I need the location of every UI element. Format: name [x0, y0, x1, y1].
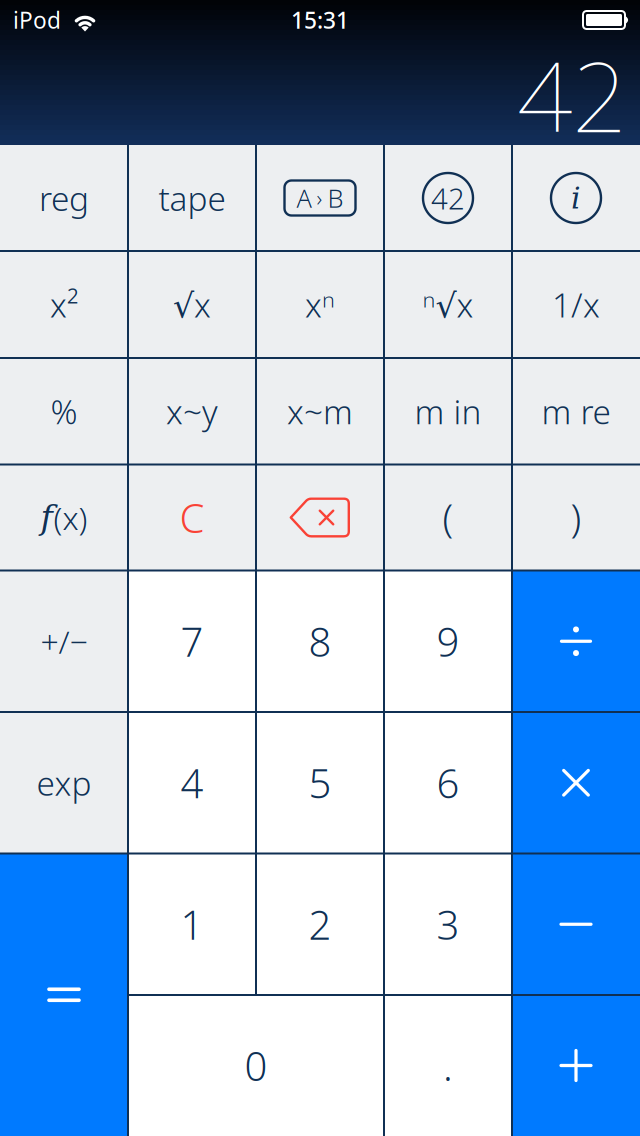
staticText: 7: [180, 615, 203, 668]
button[interactable]: Info: [512, 145, 640, 251]
button[interactable]: Add: [512, 995, 640, 1136]
staticText: 42: [431, 178, 465, 217]
staticText: f: [40, 498, 52, 537]
staticText: B: [327, 181, 343, 215]
button[interactable]: exp: [0, 712, 128, 853]
staticText: C: [179, 491, 204, 544]
staticText: i: [571, 180, 581, 215]
staticText: exp: [36, 761, 91, 805]
staticText: 3: [436, 898, 459, 951]
staticText: m re: [541, 389, 610, 433]
button[interactable]: tape: [128, 145, 256, 251]
button[interactable]: C: [128, 464, 256, 570]
button[interactable]: 1: [128, 853, 256, 995]
staticText: ›: [316, 184, 322, 212]
button[interactable]: 7: [128, 570, 256, 712]
button[interactable]: ⁿ√x: [384, 251, 512, 358]
button[interactable]: +/−: [0, 570, 128, 712]
staticText: x~m: [287, 389, 353, 433]
staticText: (x): [53, 496, 87, 539]
staticText: iPod: [13, 5, 61, 35]
staticText: 1/x: [552, 282, 600, 327]
button[interactable]: 6: [384, 712, 512, 853]
button[interactable]: 5: [256, 712, 384, 853]
button[interactable]: x²: [0, 251, 128, 358]
button[interactable]: (: [384, 464, 512, 570]
button[interactable]: Equals: [0, 853, 128, 1136]
button[interactable]: Multiply: [512, 712, 640, 853]
staticText: .: [443, 1039, 453, 1092]
staticText: 8: [308, 615, 331, 668]
button[interactable]: Function: [0, 464, 128, 570]
staticText: xⁿ: [305, 282, 335, 327]
button[interactable]: Divide: [512, 570, 640, 712]
staticText: 5: [308, 756, 331, 809]
staticText: 42: [517, 30, 627, 159]
button[interactable]: x~y: [128, 358, 256, 464]
staticText: %: [50, 389, 77, 433]
staticText: 2: [308, 898, 331, 951]
staticText: 4: [180, 756, 203, 809]
staticText: tape: [158, 176, 225, 220]
button[interactable]: 9: [384, 570, 512, 712]
staticText: m in: [414, 389, 481, 433]
staticText: √x: [173, 282, 211, 327]
button[interactable]: 42: [384, 145, 512, 251]
staticText: ): [570, 492, 581, 543]
button[interactable]: 4: [128, 712, 256, 853]
button[interactable]: 0: [128, 995, 384, 1136]
button[interactable]: 8: [256, 570, 384, 712]
button[interactable]: x~m: [256, 358, 384, 464]
button[interactable]: .: [384, 995, 512, 1136]
button[interactable]: Convert A to B: [256, 145, 384, 251]
button[interactable]: xⁿ: [256, 251, 384, 358]
button[interactable]: 1/x: [512, 251, 640, 358]
button[interactable]: %: [0, 358, 128, 464]
button[interactable]: ): [512, 464, 640, 570]
staticText: +/−: [40, 620, 87, 662]
staticText: reg: [39, 176, 89, 220]
staticText: 9: [436, 615, 459, 668]
staticText: 6: [436, 756, 459, 809]
staticText: 0: [244, 1039, 267, 1092]
button[interactable]: √x: [128, 251, 256, 358]
staticText: 15:31: [291, 5, 349, 35]
staticText: 1: [180, 898, 203, 951]
staticText: A: [296, 181, 311, 215]
staticText: x²: [50, 282, 78, 327]
button[interactable]: 2: [256, 853, 384, 995]
staticText: ⁿ√x: [422, 282, 473, 327]
button[interactable]: m in: [384, 358, 512, 464]
button[interactable]: reg: [0, 145, 128, 251]
staticText: (: [442, 492, 453, 543]
button[interactable]: Subtract: [512, 853, 640, 995]
button[interactable]: m re: [512, 358, 640, 464]
button[interactable]: 3: [384, 853, 512, 995]
button[interactable]: Delete: [256, 464, 384, 570]
staticText: x~y: [166, 389, 218, 433]
